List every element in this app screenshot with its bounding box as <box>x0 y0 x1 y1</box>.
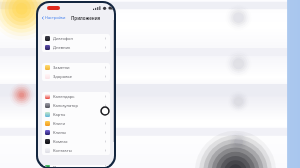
button[interactable]: Диктофон <box>42 34 110 43</box>
button[interactable]: Погода <box>42 165 110 167</box>
button[interactable]: Клипы <box>42 128 110 137</box>
button[interactable]: Настройки <box>41 15 68 20</box>
button[interactable]: Календарь <box>42 92 110 101</box>
staticText: Дневник <box>53 45 104 51</box>
button[interactable]: Карты <box>42 110 110 119</box>
other: Cursor <box>99 105 111 117</box>
staticText: Карты <box>53 112 104 118</box>
other: Recording <box>47 6 60 10</box>
staticText: Приложения <box>71 15 101 21</box>
button[interactable]: Компас <box>42 137 110 146</box>
staticText: Компас <box>53 139 104 145</box>
button[interactable]: Книги <box>42 119 110 128</box>
staticText: Книги <box>53 121 104 127</box>
button[interactable]: Заметки <box>42 63 110 72</box>
staticText: Погода <box>53 165 104 167</box>
staticText: Контакты <box>53 148 104 154</box>
button[interactable]: Контакты <box>42 146 110 155</box>
button[interactable]: Здоровье <box>42 72 110 81</box>
staticText: Настройки <box>45 15 66 20</box>
staticText: Здоровье <box>53 74 104 80</box>
staticText: Календарь <box>53 94 104 100</box>
button[interactable]: Дневник <box>42 43 110 52</box>
staticText: Заметки <box>53 65 104 71</box>
staticText: Диктофон <box>53 36 104 42</box>
staticText: Калькулятор <box>53 103 104 109</box>
staticText: Клипы <box>53 130 104 136</box>
button[interactable]: Калькулятор <box>42 101 110 110</box>
